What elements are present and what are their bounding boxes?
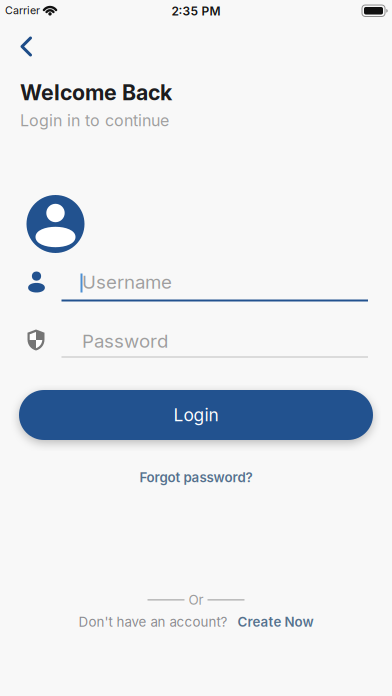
staticText: Create Now bbox=[237, 614, 313, 630]
staticText: 2:35 PM bbox=[171, 4, 220, 18]
staticText: Carrier bbox=[5, 4, 40, 17]
staticText: Forgot password? bbox=[139, 469, 252, 485]
staticText: Welcome Back bbox=[20, 80, 172, 105]
staticText: Or bbox=[188, 592, 203, 608]
staticText: Login bbox=[173, 405, 218, 425]
staticText: Password bbox=[82, 330, 168, 352]
staticText: Username bbox=[82, 271, 172, 293]
button[interactable]: Login bbox=[19, 390, 373, 440]
staticText: Don't have an account? bbox=[78, 614, 227, 630]
staticText: Login in to continue bbox=[20, 111, 169, 130]
button[interactable]: Back bbox=[9, 29, 44, 64]
button[interactable]: Create Now bbox=[237, 614, 313, 630]
button[interactable]: Forgot password? bbox=[139, 469, 252, 485]
